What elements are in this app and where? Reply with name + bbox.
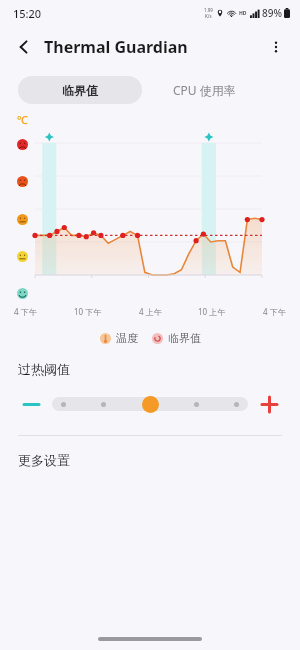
staticText: 1.99 <box>204 7 213 13</box>
staticText: 89% <box>262 6 282 20</box>
staticText: 15:20 <box>13 6 42 21</box>
button[interactable]: Threshold level <box>142 396 159 413</box>
staticText: 10 上午 <box>198 306 226 317</box>
button[interactable]: 更多设置 <box>0 436 300 484</box>
button[interactable]: Back <box>6 29 42 65</box>
staticText: 温度 <box>116 331 138 345</box>
staticText: 更多设置 <box>18 452 70 468</box>
staticText: 临界值 <box>168 331 201 345</box>
button[interactable] <box>52 397 248 411</box>
button[interactable]: More options <box>258 29 294 65</box>
staticText: 4 下午 <box>14 306 37 317</box>
staticText: 4 上午 <box>139 306 162 317</box>
staticText: K/s <box>205 13 212 19</box>
staticText: Thermal Guardian <box>44 36 188 58</box>
staticText: 4 下午 <box>263 306 286 317</box>
staticText: 10 下午 <box>74 306 102 317</box>
staticText: 临界值 <box>62 83 98 98</box>
staticText: 过热阈值 <box>18 361 70 377</box>
button[interactable]: Decrease threshold <box>16 389 46 419</box>
staticText: HD <box>239 10 247 17</box>
button[interactable]: Increase threshold <box>254 389 284 419</box>
button[interactable]: 临界值 <box>18 76 142 104</box>
staticText: ℃ <box>17 112 28 127</box>
staticText: CPU 使用率 <box>173 82 236 98</box>
button[interactable]: CPU 使用率 <box>142 76 266 104</box>
